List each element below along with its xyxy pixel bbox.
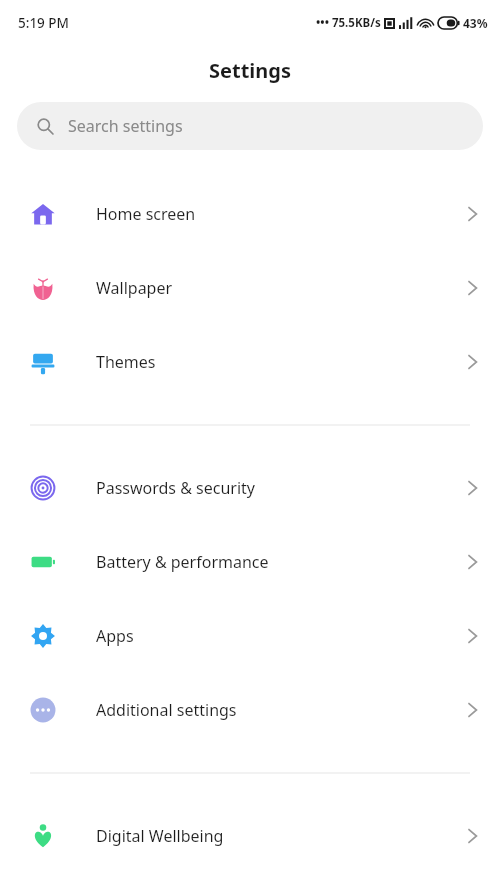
staticText: Home screen [96,203,467,225]
staticText: Apps [96,625,467,647]
staticText: Wallpaper [96,277,467,299]
button[interactable]: Battery & performance [0,525,500,599]
button[interactable]: Digital Wellbeing [0,799,500,873]
staticText: Digital Wellbeing [96,825,467,847]
button[interactable]: Additional settings [0,673,500,747]
button[interactable]: Passwords & security [0,451,500,525]
staticText: Themes [96,351,467,373]
staticText: Passwords & security [96,477,467,499]
button[interactable]: Home screen [0,177,500,251]
staticText: ••• 75.5KB/s [316,15,381,31]
staticText: Battery & performance [96,551,467,573]
staticText: 43% [463,15,488,31]
staticText: 5:19 PM [18,14,69,32]
button[interactable]: Themes [0,325,500,399]
button[interactable]: Wallpaper [0,251,500,325]
button[interactable]: Apps [0,599,500,673]
staticText: Settings [209,57,291,84]
button[interactable]: Search settings [17,102,483,150]
staticText: Additional settings [96,699,467,721]
staticText: Search settings [68,115,183,137]
